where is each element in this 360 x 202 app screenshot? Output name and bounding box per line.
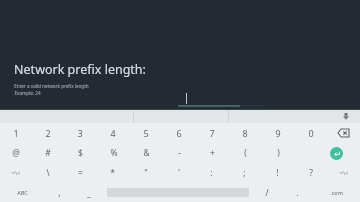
button[interactable]: 6 (162, 123, 195, 143)
button[interactable]: ; (228, 163, 261, 183)
staticText: & (143, 147, 150, 159)
button[interactable]: ) (262, 143, 295, 163)
staticText: . (296, 187, 299, 199)
staticText: 2 (45, 127, 51, 139)
staticText: =\< (11, 169, 21, 177)
button[interactable]: , (44, 183, 74, 202)
button[interactable]: / (252, 183, 282, 202)
button[interactable]: 1 (0, 123, 32, 143)
staticText: " (144, 167, 148, 179)
staticText: ; (243, 167, 246, 179)
staticText: 3 (77, 127, 83, 139)
staticText: Enter a valid network prefix length (14, 83, 89, 89)
staticText: 6 (176, 127, 182, 139)
button[interactable]: % (97, 143, 130, 163)
staticText: ' (178, 167, 180, 179)
staticText: 1 (13, 127, 19, 139)
button[interactable] (178, 92, 266, 110)
staticText: * (110, 167, 115, 179)
button[interactable]: Hide keyboard (340, 111, 352, 123)
staticText: ) (277, 147, 280, 159)
staticText: =\< (339, 169, 349, 177)
staticText: ( (244, 147, 247, 159)
staticText: _ (87, 187, 91, 199)
button[interactable]: ' (162, 163, 195, 183)
button[interactable]: ! (261, 163, 294, 183)
button[interactable]: . (282, 183, 312, 202)
button[interactable]: ( (229, 143, 262, 163)
staticText: # (45, 147, 51, 159)
staticText: 9 (275, 127, 281, 139)
staticText: ! (276, 167, 279, 179)
button[interactable]: @ (0, 143, 32, 163)
button[interactable]: ABC (0, 183, 44, 202)
staticText: ? (309, 167, 313, 179)
button[interactable]: Enter (313, 143, 360, 163)
staticText: 5 (143, 127, 149, 139)
button[interactable]: 2 (32, 123, 64, 143)
staticText: % (110, 147, 118, 159)
staticText: - (178, 147, 181, 159)
button[interactable]: ? (294, 163, 327, 183)
staticText: , (58, 187, 61, 199)
button[interactable]: 8 (228, 123, 261, 143)
staticText: Example: 24 (14, 90, 41, 96)
button[interactable]: - (163, 143, 196, 163)
staticText: / (265, 187, 269, 199)
staticText: = (78, 167, 83, 179)
staticText: : (210, 167, 213, 179)
staticText: $ (78, 147, 83, 159)
staticText: ABC (17, 189, 28, 196)
button[interactable]: 7 (195, 123, 228, 143)
button[interactable]: 9 (261, 123, 294, 143)
button[interactable]: & (130, 143, 163, 163)
button[interactable]: * (96, 163, 129, 183)
staticText: 4 (110, 127, 116, 139)
button[interactable]: + (196, 143, 229, 163)
button[interactable]: " (129, 163, 162, 183)
button[interactable]: =\< (0, 163, 32, 183)
staticText: Network prefix length: (14, 61, 146, 78)
button[interactable]: Backspace (327, 123, 360, 143)
staticText: 0 (308, 127, 314, 139)
staticText: @ (12, 147, 20, 159)
staticText: + (210, 147, 215, 159)
staticText: 8 (242, 127, 248, 139)
button[interactable]: \ (32, 163, 64, 183)
button[interactable]: 3 (64, 123, 96, 143)
staticText: \ (46, 167, 50, 179)
button[interactable]: =\< (327, 163, 360, 183)
staticText: .com (330, 189, 343, 196)
button[interactable]: 0 (294, 123, 327, 143)
button[interactable]: 5 (129, 123, 162, 143)
button[interactable]: .com (312, 183, 360, 202)
button[interactable]: _ (74, 183, 104, 202)
button[interactable]: : (195, 163, 228, 183)
button[interactable]: $ (64, 143, 97, 163)
staticText: 7 (209, 127, 215, 139)
button[interactable]: # (32, 143, 64, 163)
button[interactable]: = (64, 163, 96, 183)
button[interactable]: 4 (96, 123, 129, 143)
